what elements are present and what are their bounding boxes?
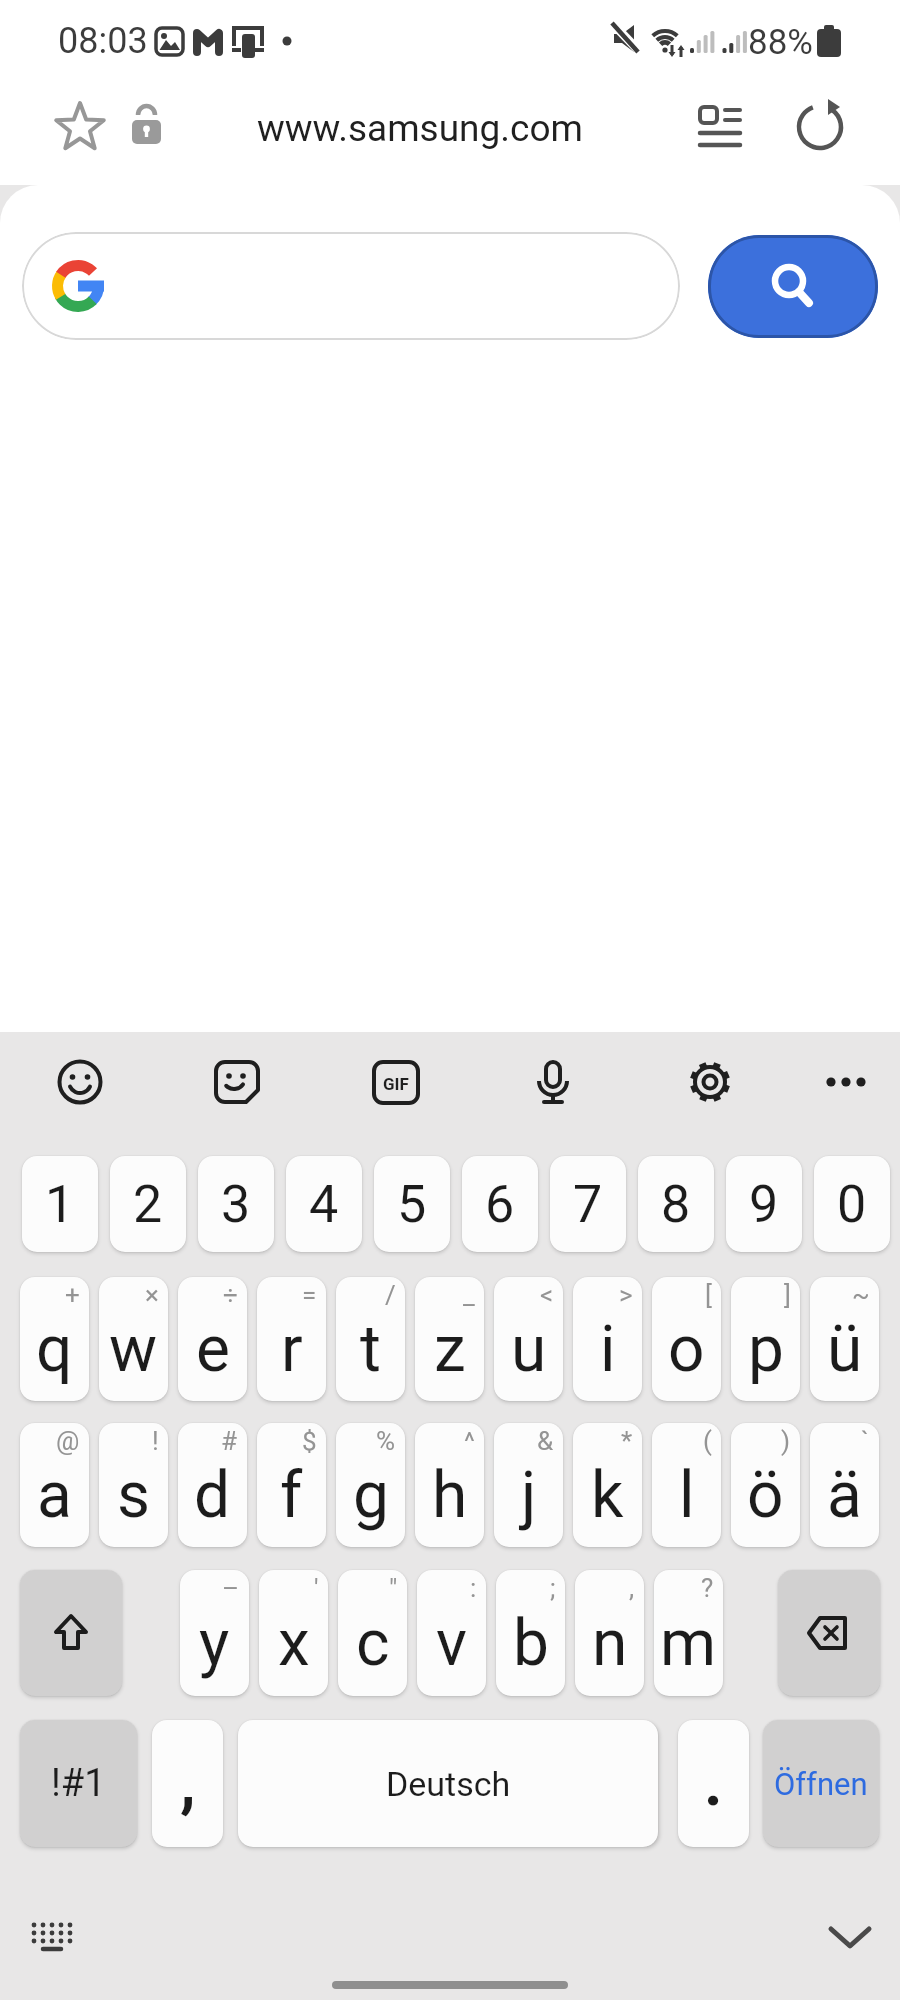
staticText: ^ bbox=[464, 1426, 475, 1456]
button[interactable]: 2 bbox=[110, 1156, 186, 1252]
button[interactable] bbox=[20, 1570, 122, 1696]
button[interactable] bbox=[529, 1061, 577, 1109]
button[interactable]: www.samsung.com bbox=[120, 95, 720, 161]
staticText: ÷ bbox=[223, 1280, 238, 1310]
button[interactable]: 6 bbox=[462, 1156, 538, 1252]
staticText: 0 bbox=[837, 1174, 867, 1235]
button[interactable]: 7 bbox=[550, 1156, 626, 1252]
button[interactable]: l bbox=[652, 1423, 721, 1547]
staticText: 4 bbox=[309, 1174, 339, 1235]
staticText: q bbox=[36, 1312, 73, 1387]
button[interactable]: 8 bbox=[638, 1156, 714, 1252]
button[interactable]: h bbox=[415, 1423, 484, 1547]
button[interactable]: d bbox=[178, 1423, 247, 1547]
button[interactable]: Deutsch bbox=[238, 1720, 658, 1847]
button[interactable] bbox=[818, 1905, 882, 1969]
staticText: $ bbox=[302, 1426, 317, 1456]
button[interactable]: ö bbox=[731, 1423, 800, 1547]
button[interactable]: i bbox=[573, 1277, 642, 1401]
button[interactable]: y bbox=[180, 1570, 249, 1696]
staticText: a bbox=[37, 1458, 72, 1533]
button[interactable]: GIF bbox=[372, 1061, 420, 1109]
staticText: x bbox=[278, 1606, 310, 1681]
staticText: ä bbox=[827, 1458, 862, 1533]
staticText: j bbox=[521, 1458, 537, 1533]
button[interactable] bbox=[822, 1061, 870, 1109]
staticText: = bbox=[302, 1280, 317, 1310]
button[interactable]: r bbox=[257, 1277, 326, 1401]
button[interactable] bbox=[56, 1061, 104, 1109]
staticText: www.samsung.com bbox=[257, 107, 583, 150]
staticText: Deutsch bbox=[386, 1764, 511, 1804]
button[interactable]: s bbox=[99, 1423, 168, 1547]
button[interactable]: u bbox=[494, 1277, 563, 1401]
staticText: t bbox=[360, 1312, 381, 1387]
button[interactable]: 1 bbox=[22, 1156, 98, 1252]
button[interactable] bbox=[213, 1061, 261, 1109]
button[interactable]: x bbox=[259, 1570, 328, 1696]
staticText: 1 bbox=[45, 1174, 75, 1235]
staticText: w bbox=[109, 1312, 158, 1387]
button[interactable] bbox=[708, 235, 878, 338]
button[interactable]: t bbox=[336, 1277, 405, 1401]
staticText: ' bbox=[314, 1573, 319, 1603]
staticText: 7 bbox=[573, 1174, 603, 1235]
staticText: 9 bbox=[749, 1174, 779, 1235]
staticText: ö bbox=[747, 1458, 784, 1533]
button[interactable]: j bbox=[494, 1423, 563, 1547]
button[interactable]: !#1 bbox=[20, 1720, 137, 1847]
button[interactable]: q bbox=[20, 1277, 89, 1401]
staticText: s bbox=[117, 1458, 151, 1533]
button[interactable]: n bbox=[575, 1570, 644, 1696]
button[interactable]: 5 bbox=[374, 1156, 450, 1252]
button[interactable]: c bbox=[338, 1570, 407, 1696]
staticText: b bbox=[513, 1606, 549, 1681]
staticText: – bbox=[222, 1573, 240, 1603]
staticText: r bbox=[281, 1312, 303, 1387]
staticText: / bbox=[385, 1280, 396, 1310]
button[interactable]: e bbox=[178, 1277, 247, 1401]
button[interactable] bbox=[20, 1905, 84, 1969]
staticText: ; bbox=[550, 1573, 556, 1603]
button[interactable]: 4 bbox=[286, 1156, 362, 1252]
button[interactable]: v bbox=[417, 1570, 486, 1696]
button[interactable] bbox=[22, 232, 680, 340]
button[interactable]: a bbox=[20, 1423, 89, 1547]
button[interactable]: 9 bbox=[726, 1156, 802, 1252]
button[interactable]: 0 bbox=[814, 1156, 890, 1252]
staticText: @ bbox=[56, 1426, 80, 1456]
button[interactable] bbox=[778, 1570, 880, 1696]
button[interactable]: . bbox=[678, 1720, 749, 1847]
staticText: , bbox=[180, 1746, 196, 1821]
button[interactable]: z bbox=[415, 1277, 484, 1401]
staticText: % bbox=[376, 1426, 396, 1456]
button[interactable] bbox=[686, 1061, 734, 1109]
staticText: d bbox=[194, 1458, 231, 1533]
staticText: k bbox=[591, 1458, 624, 1533]
button[interactable]: o bbox=[652, 1277, 721, 1401]
button[interactable]: w bbox=[99, 1277, 168, 1401]
button[interactable]: f bbox=[257, 1423, 326, 1547]
staticText: 5 bbox=[397, 1174, 427, 1235]
button[interactable]: ä bbox=[810, 1423, 879, 1547]
button[interactable] bbox=[688, 95, 752, 159]
button[interactable]: 3 bbox=[198, 1156, 274, 1252]
button[interactable]: b bbox=[496, 1570, 565, 1696]
button[interactable] bbox=[788, 95, 852, 159]
button[interactable]: p bbox=[731, 1277, 800, 1401]
staticText: ( bbox=[703, 1426, 712, 1456]
staticText: & bbox=[537, 1426, 554, 1456]
staticText: p bbox=[748, 1312, 784, 1387]
button[interactable]: Öffnen bbox=[763, 1720, 879, 1847]
button[interactable]: , bbox=[152, 1720, 223, 1847]
button[interactable]: ü bbox=[810, 1277, 879, 1401]
staticText: 88% bbox=[748, 22, 813, 63]
staticText: " bbox=[389, 1573, 398, 1603]
button[interactable] bbox=[48, 96, 112, 160]
button[interactable]: g bbox=[336, 1423, 405, 1547]
staticText: 8 bbox=[661, 1174, 691, 1235]
staticText: m bbox=[660, 1606, 717, 1681]
staticText: 3 bbox=[221, 1174, 251, 1235]
button[interactable]: m bbox=[654, 1570, 723, 1696]
button[interactable]: k bbox=[573, 1423, 642, 1547]
